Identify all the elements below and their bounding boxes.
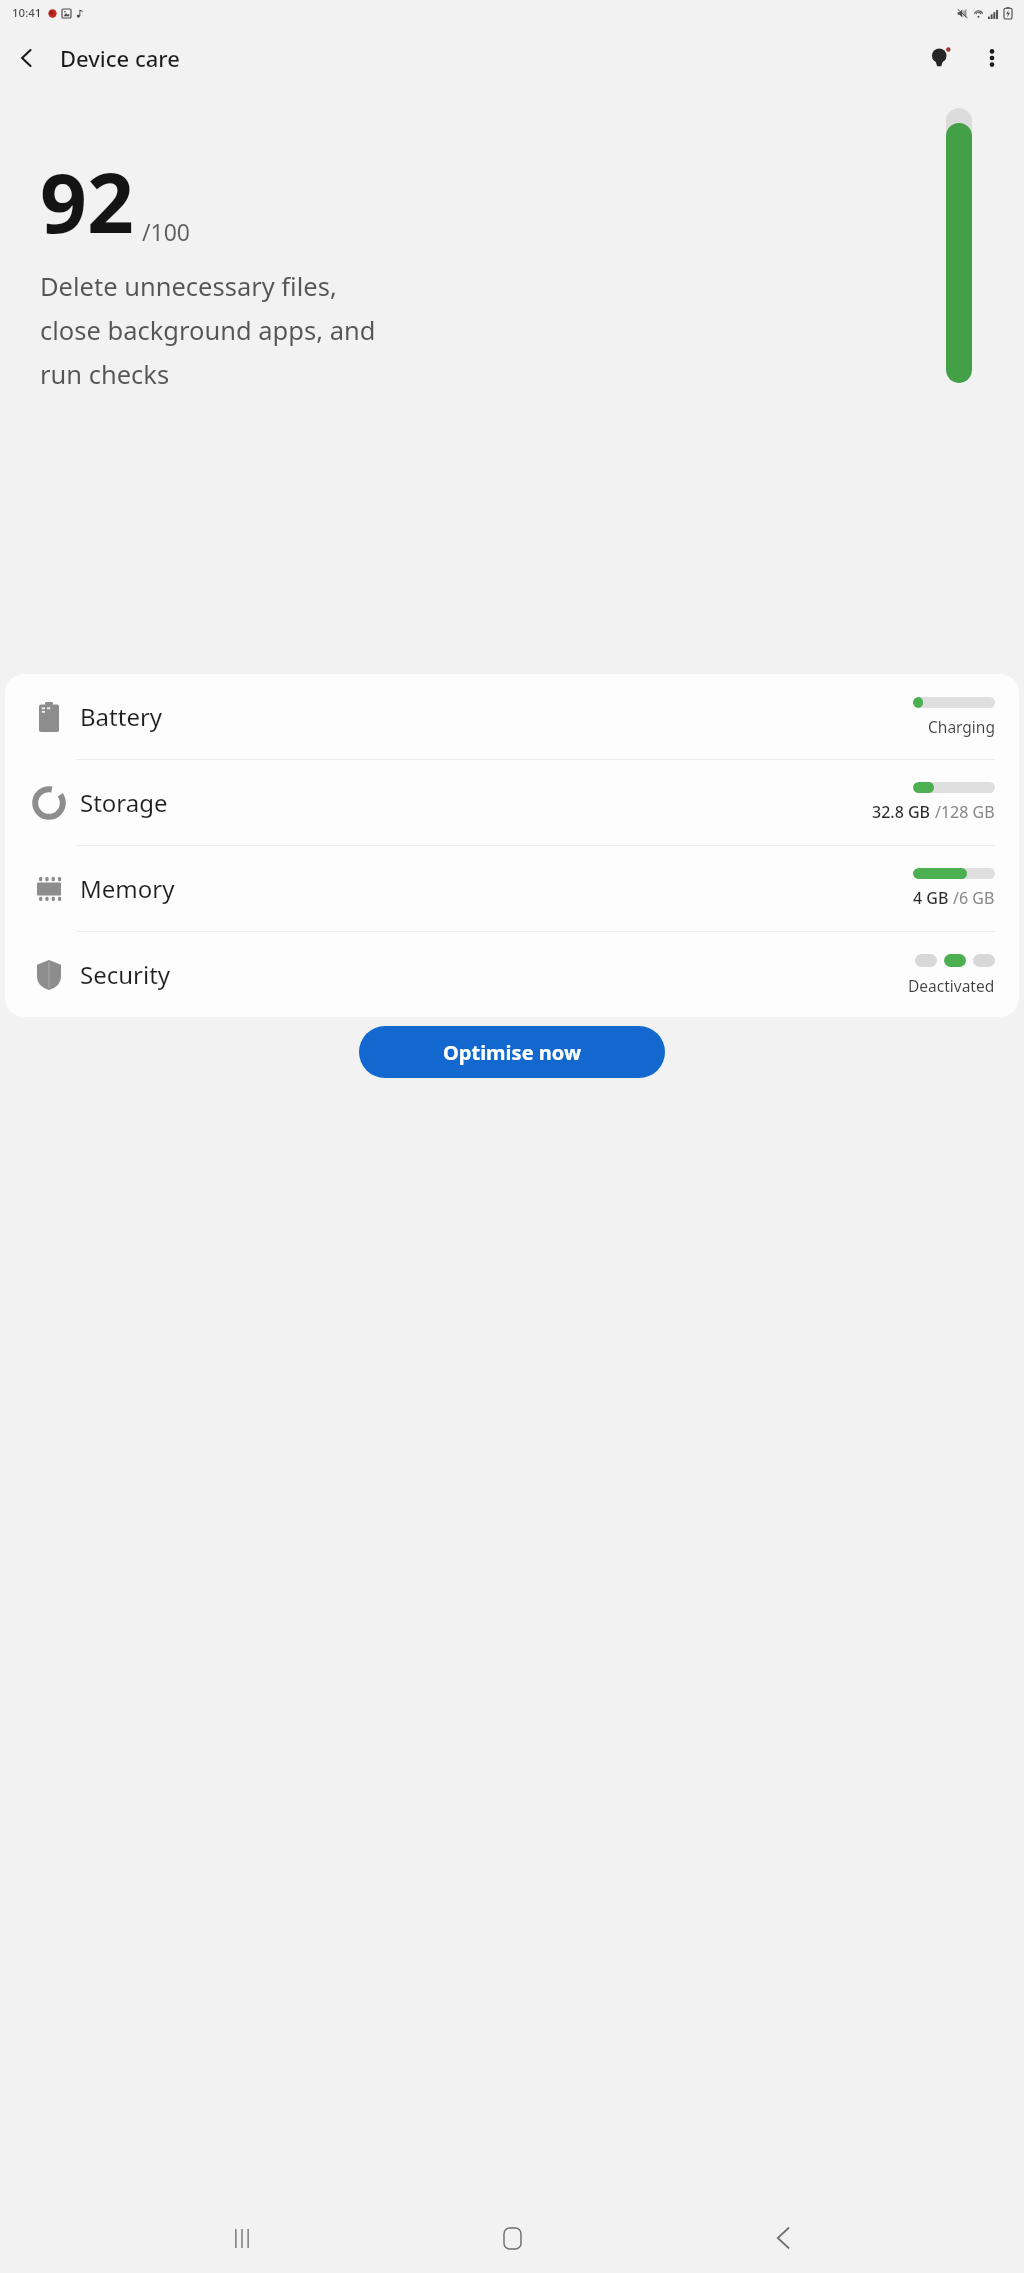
button[interactable]: Security bbox=[5, 932, 1019, 1017]
staticText: Battery bbox=[80, 700, 163, 733]
staticText: Storage bbox=[80, 786, 168, 819]
staticText: Security bbox=[80, 958, 171, 991]
staticText: /100 bbox=[142, 216, 191, 247]
staticText: 92 bbox=[40, 145, 134, 257]
button[interactable]: Storage bbox=[5, 760, 1019, 845]
staticText: /6 GB bbox=[953, 887, 995, 909]
staticText: 10:41 bbox=[12, 5, 42, 21]
staticText: Optimise now bbox=[443, 1039, 581, 1066]
staticText: 32.8 GB bbox=[872, 801, 935, 823]
staticText: /128 GB bbox=[935, 801, 995, 823]
staticText: Memory bbox=[80, 872, 175, 905]
staticText: 4 GB bbox=[913, 887, 953, 909]
button[interactable]: Optimise now bbox=[359, 1026, 665, 1078]
staticText: Device care bbox=[60, 43, 180, 73]
button[interactable]: Back bbox=[754, 2209, 812, 2267]
button[interactable]: Battery bbox=[5, 674, 1019, 759]
button[interactable]: Recents bbox=[213, 2209, 271, 2267]
button[interactable]: Memory bbox=[5, 846, 1019, 931]
staticText: Deactivated bbox=[908, 975, 995, 996]
staticText: Delete unnecessary files, bbox=[40, 269, 337, 304]
button[interactable]: Tips bbox=[914, 32, 966, 84]
button[interactable]: More options bbox=[966, 32, 1018, 84]
button[interactable]: Home bbox=[483, 2209, 541, 2267]
staticText: run checks bbox=[40, 357, 170, 392]
staticText: Charging bbox=[928, 716, 995, 737]
staticText: close background apps, and bbox=[40, 313, 376, 348]
button[interactable]: Back bbox=[0, 31, 54, 85]
